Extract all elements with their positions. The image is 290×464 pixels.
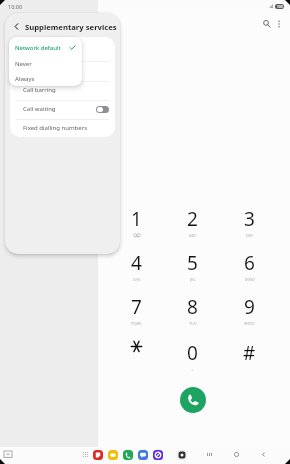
staticText: ABC: [189, 233, 197, 238]
button[interactable]: Call waiting: [10, 102, 115, 116]
staticText: 0: [187, 340, 198, 366]
button[interactable]: Fixed dialling numbers: [10, 121, 115, 135]
staticText: 6: [244, 250, 255, 276]
staticText: 2: [187, 206, 198, 232]
button[interactable]: Never: [9, 58, 82, 69]
staticText: Network default: [15, 44, 61, 52]
button[interactable]: Call diverting: [10, 64, 115, 78]
staticText: MNO: [245, 277, 255, 282]
button[interactable]: Recents: [203, 448, 216, 461]
button[interactable]: #: [221, 340, 278, 384]
staticText: +: [191, 367, 194, 372]
staticText: 9: [244, 294, 255, 320]
staticText: Call waiting: [23, 105, 56, 113]
staticText: 4: [131, 250, 142, 276]
button[interactable]: 0: [164, 340, 221, 384]
button[interactable]: More options: [271, 16, 286, 31]
button[interactable]: 5: [164, 250, 221, 294]
button[interactable]: Call: [180, 387, 206, 413]
button[interactable]: 4: [108, 250, 164, 294]
staticText: #: [243, 340, 256, 366]
button[interactable]: Call barring: [10, 83, 115, 97]
button[interactable]: 1: [108, 206, 164, 250]
staticText: DEF: [246, 233, 254, 238]
button[interactable]: Screenshot: [1, 448, 15, 462]
button[interactable]: Back: [9, 19, 24, 34]
staticText: 10:00: [8, 3, 23, 10]
staticText: 3: [244, 206, 255, 232]
staticText: Call forwarding: [23, 44, 67, 52]
button[interactable]: Camera: [177, 450, 187, 460]
button[interactable]: Notes: [93, 450, 103, 460]
staticText: 7: [131, 294, 142, 320]
staticText: TUV: [189, 321, 197, 326]
button[interactable]: Network default: [9, 42, 82, 53]
staticText: Always: [15, 75, 35, 83]
button[interactable]: Internet: [153, 450, 163, 460]
button[interactable]: 3: [221, 206, 278, 250]
button[interactable]: Search: [259, 16, 274, 31]
staticText: 1: [131, 206, 142, 232]
staticText: Supplementary services: [25, 22, 117, 32]
staticText: 5: [187, 250, 198, 276]
button[interactable]: Home: [230, 448, 243, 461]
button[interactable]: Call waiting toggle: [96, 106, 109, 113]
button[interactable]: Call forwarding: [10, 41, 115, 55]
button[interactable]: 7: [108, 294, 164, 338]
staticText: Call barring: [23, 86, 56, 94]
button[interactable]: [108, 340, 164, 384]
staticText: 8: [187, 294, 198, 320]
staticText: GHI: [133, 277, 141, 282]
button[interactable]: All apps: [81, 450, 90, 459]
button[interactable]: 6: [221, 250, 278, 294]
staticText: 100: [277, 5, 283, 9]
button[interactable]: Always: [9, 73, 82, 84]
button[interactable]: Files: [108, 450, 118, 460]
button[interactable]: Messages: [138, 450, 148, 460]
button[interactable]: 8: [164, 294, 221, 338]
button[interactable]: Phone: [123, 450, 133, 460]
button[interactable]: 9: [221, 294, 278, 338]
button[interactable]: 2: [164, 206, 221, 250]
staticText: PQRS: [131, 321, 142, 326]
staticText: Never: [15, 60, 32, 68]
button[interactable]: Back: [257, 448, 270, 461]
staticText: WXYZ: [244, 321, 255, 326]
staticText: JKL: [190, 277, 196, 282]
staticText: Fixed dialling numbers: [23, 124, 88, 132]
